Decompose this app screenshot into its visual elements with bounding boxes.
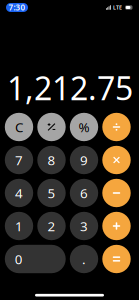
staticText: 7 xyxy=(15,151,23,169)
staticText: 5 xyxy=(47,184,55,202)
button[interactable]: 8 xyxy=(37,146,66,174)
button[interactable]: 4 xyxy=(5,179,33,207)
staticText: 7:30 xyxy=(8,2,25,13)
button[interactable]: Divide xyxy=(102,113,131,141)
button[interactable]: 1 xyxy=(5,212,33,240)
staticText: % xyxy=(78,118,89,136)
staticText: 9 xyxy=(80,151,88,169)
button[interactable]: 2 xyxy=(37,212,66,240)
button[interactable]: 3 xyxy=(70,212,98,240)
button[interactable]: 6 xyxy=(70,179,98,207)
button[interactable]: C xyxy=(5,113,33,141)
button[interactable]: Minus xyxy=(102,179,131,207)
button[interactable]: % xyxy=(70,113,98,141)
staticText: . xyxy=(82,250,86,268)
button[interactable]: Plus Minus xyxy=(37,113,66,141)
button[interactable]: Plus xyxy=(102,212,131,240)
staticText: 6 xyxy=(80,184,88,202)
button[interactable]: 9 xyxy=(70,146,98,174)
staticText: 8 xyxy=(47,151,55,169)
staticText: 2 xyxy=(47,217,55,235)
button[interactable]: 0 xyxy=(5,245,66,273)
staticText: 4 xyxy=(15,184,23,202)
button[interactable]: Equals xyxy=(102,245,131,273)
staticText: 0 xyxy=(15,250,23,268)
staticText: LTE xyxy=(113,4,122,11)
staticText: 3 xyxy=(80,217,88,235)
button[interactable]: . xyxy=(70,245,98,273)
staticText: 1 xyxy=(15,217,23,235)
button[interactable]: Multiply xyxy=(102,146,131,174)
staticText: C xyxy=(15,118,23,136)
button[interactable]: 7 xyxy=(5,146,33,174)
staticText: 1,212.75 xyxy=(7,67,133,109)
button[interactable]: 5 xyxy=(37,179,66,207)
